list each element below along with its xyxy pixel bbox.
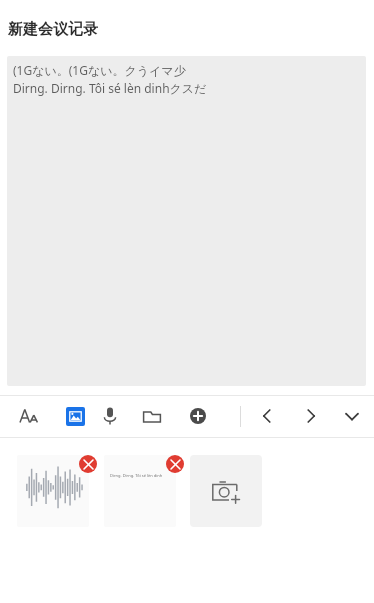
button[interactable]: Dirng. Dirng. Tôi sé lèn dinh (104, 455, 176, 527)
button[interactable]: (1Gない。(1Gない。クうイマ少 (7, 56, 366, 386)
button[interactable]: Record audio (94, 400, 126, 432)
button[interactable]: Remove attachment (166, 455, 184, 473)
button[interactable]: Previous (251, 400, 283, 432)
button[interactable] (17, 455, 89, 527)
button[interactable]: Collapse (336, 400, 368, 432)
staticText: 新建会议记录 (8, 20, 98, 39)
button[interactable]: Take photo (190, 455, 262, 527)
button[interactable]: Insert image (59, 400, 91, 432)
button[interactable]: Add (182, 400, 214, 432)
button[interactable]: Next (295, 400, 327, 432)
staticText: Dirng. Dirng. Tôi sé lèn dinh (110, 473, 163, 478)
button[interactable]: Text format (13, 400, 45, 432)
button[interactable]: Attach file (136, 400, 168, 432)
button[interactable]: Remove attachment (79, 455, 97, 473)
staticText: Dirng. Dirng. Tôi sé lèn dinhクスだ (13, 80, 207, 96)
staticText: (1Gない。(1Gない。クうイマ少 (13, 62, 186, 78)
